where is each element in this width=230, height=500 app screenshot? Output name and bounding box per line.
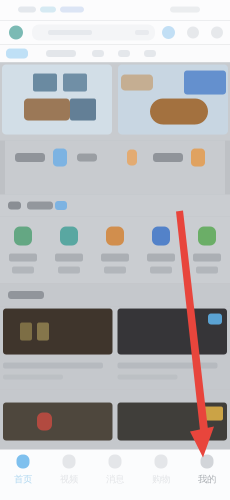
button[interactable]: 我的 xyxy=(184,449,230,500)
button[interactable]: 消息 xyxy=(92,449,138,500)
button[interactable]: 视频 xyxy=(46,449,92,500)
staticText: 我的 xyxy=(198,473,216,485)
staticText: 首页 xyxy=(14,473,32,485)
staticText: 视频 xyxy=(60,473,78,485)
button[interactable]: 首页 xyxy=(0,449,46,500)
staticText: 购物 xyxy=(152,473,170,485)
button[interactable]: 购物 xyxy=(138,449,184,500)
staticText: 消息 xyxy=(106,473,124,485)
